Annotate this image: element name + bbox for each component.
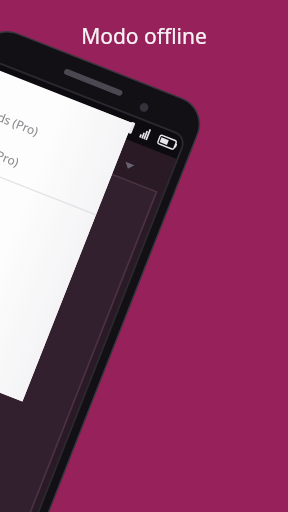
staticText: Modo offline [81, 22, 207, 51]
button[interactable]: App preview screenshot [0, 230, 158, 512]
